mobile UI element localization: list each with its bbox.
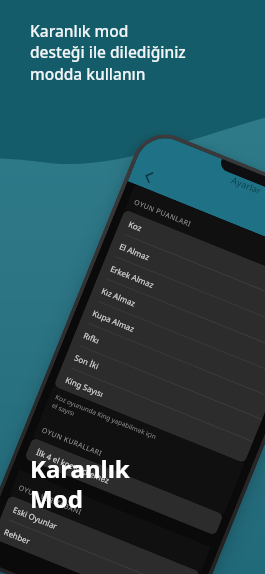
staticText: OYUN KURALLARI [40, 426, 104, 459]
staticText: Rıfkı [82, 329, 102, 346]
button[interactable]: El Almaz [107, 231, 265, 331]
staticText: Erkek Almaz [109, 263, 156, 290]
button[interactable]: Rehber [0, 517, 192, 574]
staticText: Kız Almaz [100, 285, 137, 309]
staticText: Ayarlar [230, 173, 263, 196]
button[interactable]: Son İki [62, 343, 262, 442]
button[interactable]: Rıfkı [71, 320, 265, 420]
button[interactable]: Kupa Almaz [80, 298, 265, 398]
staticText: Karanlık mod desteği ile dilediğiniz mod… [30, 20, 245, 85]
button[interactable]: King Sayısı [53, 365, 253, 463]
staticText: Son İki [73, 352, 101, 371]
staticText: El Almaz [118, 240, 152, 263]
button[interactable]: Erkek Almaz [98, 254, 265, 353]
button[interactable]: Koz [116, 209, 265, 309]
button[interactable]: Back [137, 165, 160, 188]
button[interactable]: Eski Oyunlar [1, 495, 201, 574]
staticText: Koz [127, 218, 144, 233]
button[interactable]: İlk 4 el koz seçilemez [24, 437, 224, 536]
staticText: Kupa Almaz [91, 307, 137, 334]
staticText: Koz oyununda King yapabilmek için el say… [51, 392, 158, 449]
staticText: Rehber [2, 526, 33, 547]
staticText: Eski Oyunlar [11, 504, 59, 531]
staticText: OYUN VERİTABANI [17, 483, 84, 518]
staticText: Karanlık Mod [30, 452, 200, 515]
button[interactable]: Kız Almaz [89, 276, 265, 375]
staticText: İlk 4 el koz seçilemez [35, 446, 111, 486]
staticText: OYUN PUANLARI [132, 197, 193, 230]
staticText: King Sayısı [64, 374, 105, 399]
